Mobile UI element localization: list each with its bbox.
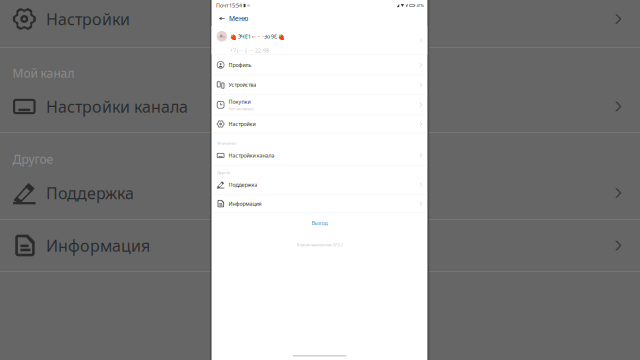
staticText: Информация bbox=[46, 235, 150, 256]
button[interactable]: Настройки канала bbox=[212, 146, 428, 166]
staticText: Мой канал bbox=[217, 140, 236, 146]
staticText: Настройки bbox=[46, 8, 130, 30]
button[interactable]: Настройки bbox=[0, 0, 640, 48]
button[interactable]: Информация bbox=[212, 194, 428, 213]
staticText: 🍓 ЭЧЕ1 ›⋅ ⋅ ⋅Ⅎо 9Ɛ 🍓 bbox=[230, 33, 285, 40]
staticText: Покупки bbox=[228, 98, 250, 105]
staticText: Мой канал bbox=[12, 65, 74, 81]
staticText: Нет активных bbox=[228, 106, 253, 111]
staticText: Версия приложения 37.0.2 bbox=[297, 242, 343, 247]
button[interactable]: Настройки bbox=[212, 115, 428, 133]
staticText: Меню bbox=[229, 14, 248, 23]
staticText: +7 (⋅⋅⋅) ⋅⋅⋅ 22-98 bbox=[230, 47, 269, 54]
staticText: Поддержка bbox=[228, 181, 257, 188]
staticText: Почт 15:54 bbox=[216, 2, 242, 9]
button[interactable]: 🍓 ЭЧЕ1 ›⋅ ⋅ ⋅Ⅎо 9Ɛ 🍓 bbox=[212, 26, 428, 55]
button[interactable]: Назад bbox=[212, 13, 229, 24]
button[interactable]: Выход bbox=[212, 213, 428, 233]
button[interactable]: Настройки канала bbox=[0, 81, 640, 133]
staticText: 41% bbox=[417, 3, 424, 8]
button[interactable]: Информация bbox=[0, 220, 640, 272]
button[interactable]: Устройства bbox=[212, 75, 428, 95]
staticText: Профиль bbox=[228, 61, 251, 68]
staticText: Устройства bbox=[228, 81, 256, 88]
staticText: Выход bbox=[312, 219, 328, 226]
staticText: Другое bbox=[12, 151, 53, 167]
button[interactable]: Профиль bbox=[212, 55, 428, 75]
staticText: Информация bbox=[228, 200, 261, 207]
staticText: Другое bbox=[217, 170, 230, 175]
staticText: Настройки канала bbox=[46, 96, 188, 117]
staticText: Поддержка bbox=[46, 182, 134, 204]
button[interactable]: Поддержка bbox=[212, 175, 428, 194]
button[interactable]: Покупки bbox=[212, 95, 428, 115]
staticText: Настройки bbox=[228, 120, 255, 128]
staticText: Настройки канала bbox=[228, 152, 274, 159]
button[interactable]: Поддержка bbox=[0, 167, 640, 220]
